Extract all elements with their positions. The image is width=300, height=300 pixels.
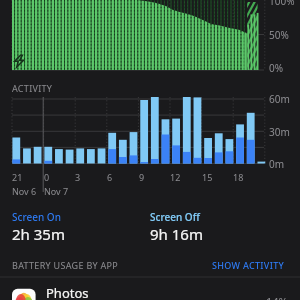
staticText: 18 bbox=[233, 171, 244, 183]
staticText: 6 bbox=[107, 171, 113, 183]
button[interactable]: SHOW ACTIVITY bbox=[212, 259, 285, 271]
staticText: Nov 6 bbox=[12, 185, 37, 197]
staticText: 0m bbox=[269, 157, 285, 171]
staticText: 100% bbox=[269, 0, 295, 8]
staticText: SHOW ACTIVITY bbox=[212, 259, 285, 271]
staticText: 15 bbox=[202, 171, 213, 183]
staticText: 60m bbox=[269, 92, 290, 106]
button[interactable]: Screen On bbox=[12, 210, 61, 224]
staticText: 9 bbox=[139, 171, 145, 183]
button[interactable]: Screen Off bbox=[150, 210, 200, 224]
staticText: 30m bbox=[269, 125, 290, 139]
staticText: 21 bbox=[12, 171, 23, 183]
staticText: 3 bbox=[75, 171, 81, 183]
staticText: 12 bbox=[170, 171, 181, 183]
staticText: ACTIVITY bbox=[12, 82, 53, 94]
staticText: BATTERY USAGE BY APP bbox=[12, 259, 119, 271]
staticText: 9h 16m bbox=[150, 224, 203, 244]
staticText: 50% bbox=[269, 28, 289, 42]
staticText: Screen Off bbox=[150, 210, 200, 224]
staticText: Photos bbox=[46, 284, 89, 300]
staticText: Screen On bbox=[12, 210, 61, 224]
staticText: 14% bbox=[266, 294, 288, 300]
staticText: 0% bbox=[269, 61, 284, 75]
staticText: 0 bbox=[44, 171, 50, 183]
staticText: Nov 7 bbox=[44, 185, 69, 197]
staticText: 2h 35m bbox=[12, 224, 65, 244]
